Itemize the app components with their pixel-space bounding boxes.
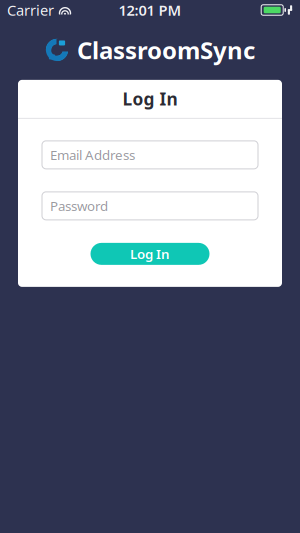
- staticText: Email Address: [50, 146, 135, 164]
- staticText: Log In: [130, 245, 170, 263]
- button[interactable]: Email Address: [42, 141, 258, 169]
- staticText: Carrier: [7, 0, 54, 20]
- staticText: Password: [50, 197, 108, 215]
- staticText: Log In: [122, 87, 177, 110]
- staticText: ClassroomSync: [77, 34, 255, 66]
- button[interactable]: Log In: [90, 243, 209, 265]
- button[interactable]: Password: [42, 192, 258, 220]
- staticText: 12:01 PM: [118, 0, 181, 20]
